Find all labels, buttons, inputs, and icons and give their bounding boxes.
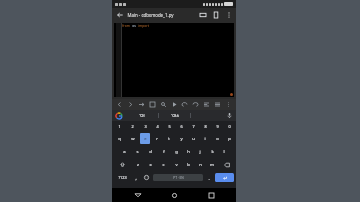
button[interactable]: . [204, 171, 214, 184]
staticText: ?123 [118, 175, 127, 180]
button[interactable]: Backspace [218, 158, 235, 171]
button[interactable]: Home [163, 188, 185, 202]
button[interactable]: PT · EN [153, 174, 203, 181]
button[interactable]: o [211, 132, 223, 145]
staticText: l [223, 149, 225, 155]
staticText: 2 [131, 124, 134, 129]
button[interactable]: Emoji [141, 171, 152, 184]
staticText: PT · EN [173, 176, 184, 180]
staticText: e [144, 136, 147, 142]
button[interactable]: c [157, 158, 170, 171]
staticText: k [211, 149, 214, 155]
button[interactable]: u [187, 132, 199, 145]
button[interactable]: Save [148, 99, 157, 110]
button[interactable]: d [144, 145, 157, 158]
button[interactable]: e [140, 133, 150, 144]
button[interactable]: Indent [137, 99, 146, 110]
button[interactable]: y [175, 132, 187, 145]
staticText: 3 [144, 124, 147, 129]
staticText: import [138, 23, 149, 28]
button[interactable]: r [151, 132, 163, 145]
button[interactable]: 9 [211, 121, 223, 132]
button[interactable]: Align [202, 99, 211, 110]
button[interactable]: Undo [180, 99, 189, 110]
button[interactable]: 2 [126, 121, 139, 132]
button[interactable]: m [206, 158, 218, 171]
button[interactable]: Tabs [198, 10, 207, 19]
button[interactable]: Enter [215, 173, 234, 182]
staticText: 4 [156, 124, 159, 129]
button[interactable]: a [118, 145, 131, 158]
button[interactable]: b [182, 158, 194, 171]
button[interactable]: , [131, 171, 141, 184]
button[interactable]: Back [115, 10, 124, 19]
button[interactable]: q [113, 132, 126, 145]
button[interactable]: x [144, 158, 157, 171]
button[interactable]: More [224, 99, 233, 110]
button[interactable]: File [211, 10, 220, 19]
button[interactable]: v [170, 158, 182, 171]
staticText: 0 [228, 124, 231, 129]
button[interactable]: Google search [112, 110, 126, 121]
button[interactable]: p [223, 132, 235, 145]
button[interactable]: Back [127, 188, 149, 202]
staticText: r [156, 136, 158, 142]
staticText: n [199, 162, 202, 168]
button[interactable]: n [194, 158, 206, 171]
staticText: 1 [118, 124, 121, 129]
button[interactable]: g [170, 145, 182, 158]
staticText: 'Olá [171, 113, 179, 118]
staticText: , [135, 175, 137, 181]
button[interactable]: f [157, 145, 170, 158]
button[interactable]: 4 [151, 121, 163, 132]
staticText: t [168, 136, 170, 142]
staticText: j [199, 149, 201, 155]
button[interactable]: h [182, 145, 194, 158]
staticText: 5 [168, 124, 171, 129]
button[interactable]: j [194, 145, 206, 158]
button[interactable]: Voice input [222, 110, 236, 121]
button[interactable]: 3 [139, 121, 151, 132]
button[interactable]: 6 [175, 121, 187, 132]
button[interactable]: s [131, 145, 144, 158]
button[interactable]: Previous [115, 99, 124, 110]
staticText: g [175, 149, 178, 155]
staticText: q [118, 136, 121, 142]
button[interactable]: 0 [223, 121, 235, 132]
button[interactable]: k [206, 145, 218, 158]
button[interactable]: w [126, 132, 139, 145]
staticText: 7 [192, 124, 195, 129]
button[interactable]: t [163, 132, 175, 145]
button[interactable]: 8 [199, 121, 211, 132]
button[interactable]: z [131, 158, 144, 171]
button[interactable]: 7 [187, 121, 199, 132]
button[interactable]: Recents [200, 188, 222, 202]
button[interactable]: 5 [163, 121, 175, 132]
button[interactable]: Search [159, 99, 168, 110]
button[interactable]: Shift [113, 158, 131, 171]
staticText: u [192, 136, 195, 142]
button[interactable]: 'Olá [159, 110, 190, 121]
staticText: 6 [180, 124, 183, 129]
staticText: Main - cdbxmode_1.py [127, 12, 174, 18]
staticText: 9 [216, 124, 219, 129]
staticText: m [210, 162, 214, 168]
button[interactable]: Redo [191, 99, 200, 110]
button[interactable]: i [199, 132, 211, 145]
button[interactable]: ?123 [113, 171, 131, 184]
button[interactable]: l [218, 145, 230, 158]
staticText: from [122, 23, 130, 28]
button[interactable]: 1 [113, 121, 126, 132]
button[interactable]: Next [126, 99, 135, 110]
button[interactable]: Run [170, 99, 179, 110]
staticText: z [137, 162, 139, 168]
staticText: a [123, 149, 126, 155]
staticText: w [131, 136, 135, 142]
staticText: h [187, 149, 190, 155]
staticText: 'Ol [139, 113, 145, 118]
button[interactable]: More options [224, 10, 233, 19]
button[interactable]: 'Ol [126, 110, 158, 121]
button[interactable]: List [213, 99, 222, 110]
staticText: . [208, 175, 210, 181]
